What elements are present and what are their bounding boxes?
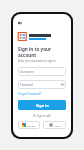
button[interactable]: Password: [18, 80, 66, 89]
staticText: Username: [20, 70, 64, 74]
staticText: Password: [20, 83, 61, 87]
button[interactable]: Apple: [43, 121, 66, 129]
button[interactable]: Back: [18, 20, 24, 26]
button[interactable]: Sign in: [18, 100, 66, 110]
staticText: Forgot Password?: [18, 92, 42, 96]
button[interactable]: Forgot Password?: [18, 92, 42, 96]
staticText: Enter your username to sign in: [18, 59, 56, 63]
button[interactable]: Google: [18, 121, 40, 129]
button[interactable]: Show password: [61, 83, 64, 86]
staticText: Sign in to your account: [18, 46, 66, 58]
staticText: Google: [27, 124, 36, 127]
staticText: Or Sign in with: [18, 114, 66, 118]
staticText: Apple: [54, 124, 61, 127]
button[interactable]: Username: [18, 67, 66, 76]
staticText: Sign in: [36, 103, 49, 108]
